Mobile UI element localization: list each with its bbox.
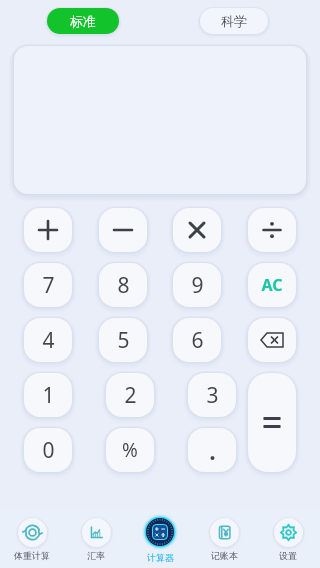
- button[interactable]: 记账本: [192, 510, 256, 568]
- button[interactable]: 4: [24, 318, 72, 362]
- staticText: 5: [117, 326, 130, 355]
- staticText: 设置: [279, 550, 297, 561]
- staticText: .: [209, 435, 216, 466]
- button[interactable]: 8: [99, 263, 147, 307]
- staticText: 体重计算: [14, 550, 50, 561]
- staticText: 科学: [221, 13, 247, 29]
- button[interactable]: 7: [24, 263, 72, 307]
- button[interactable]: Multiply: [173, 208, 221, 252]
- staticText: %: [122, 437, 138, 463]
- staticText: AC: [261, 274, 283, 296]
- button[interactable]: 汇率: [64, 510, 128, 568]
- button[interactable]: Plus: [24, 208, 72, 252]
- button[interactable]: %: [106, 428, 154, 472]
- button[interactable]: 体重计算: [0, 510, 64, 568]
- button[interactable]: Divide: [248, 208, 296, 252]
- button[interactable]: 计算器: [128, 510, 192, 568]
- staticText: 2: [124, 381, 137, 410]
- button[interactable]: .: [188, 428, 236, 472]
- staticText: 0: [42, 436, 55, 465]
- staticText: 计算器: [147, 552, 174, 563]
- button[interactable]: 1: [24, 373, 72, 417]
- button[interactable]: 9: [173, 263, 221, 307]
- button[interactable]: 2: [106, 373, 154, 417]
- button[interactable]: Backspace: [248, 318, 296, 362]
- staticText: 9: [191, 271, 204, 300]
- staticText: 3: [206, 381, 219, 410]
- button[interactable]: Equals: [248, 373, 296, 472]
- staticText: 汇率: [87, 550, 105, 561]
- button[interactable]: 5: [99, 318, 147, 362]
- button[interactable]: AC: [248, 263, 296, 307]
- button[interactable]: Minus: [99, 208, 147, 252]
- button[interactable]: 6: [173, 318, 221, 362]
- button[interactable]: 3: [188, 373, 236, 417]
- button[interactable]: 0: [24, 428, 72, 472]
- staticText: 记账本: [211, 550, 238, 561]
- staticText: 1: [42, 381, 55, 410]
- staticText: 4: [42, 326, 55, 355]
- button[interactable]: 设置: [256, 510, 320, 568]
- staticText: 标准: [70, 13, 96, 29]
- staticText: 8: [117, 271, 130, 300]
- button[interactable]: 标准: [47, 8, 119, 34]
- staticText: 6: [191, 326, 204, 355]
- staticText: 7: [42, 271, 55, 300]
- button[interactable]: 科学: [200, 8, 268, 34]
